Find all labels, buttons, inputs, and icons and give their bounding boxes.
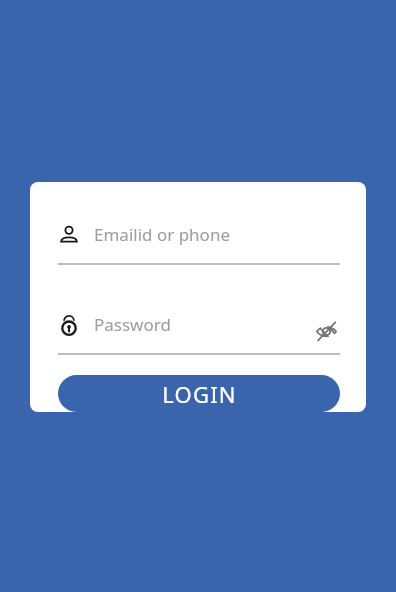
button[interactable]: LOGIN [58,375,340,412]
staticText: LOGIN [162,379,237,409]
button[interactable]: Show password [312,317,340,345]
button[interactable]: Emailid or phone [58,223,340,258]
staticText: Emailid or phone [94,223,230,246]
button[interactable]: Password [58,313,340,336]
staticText: Password [94,313,171,336]
